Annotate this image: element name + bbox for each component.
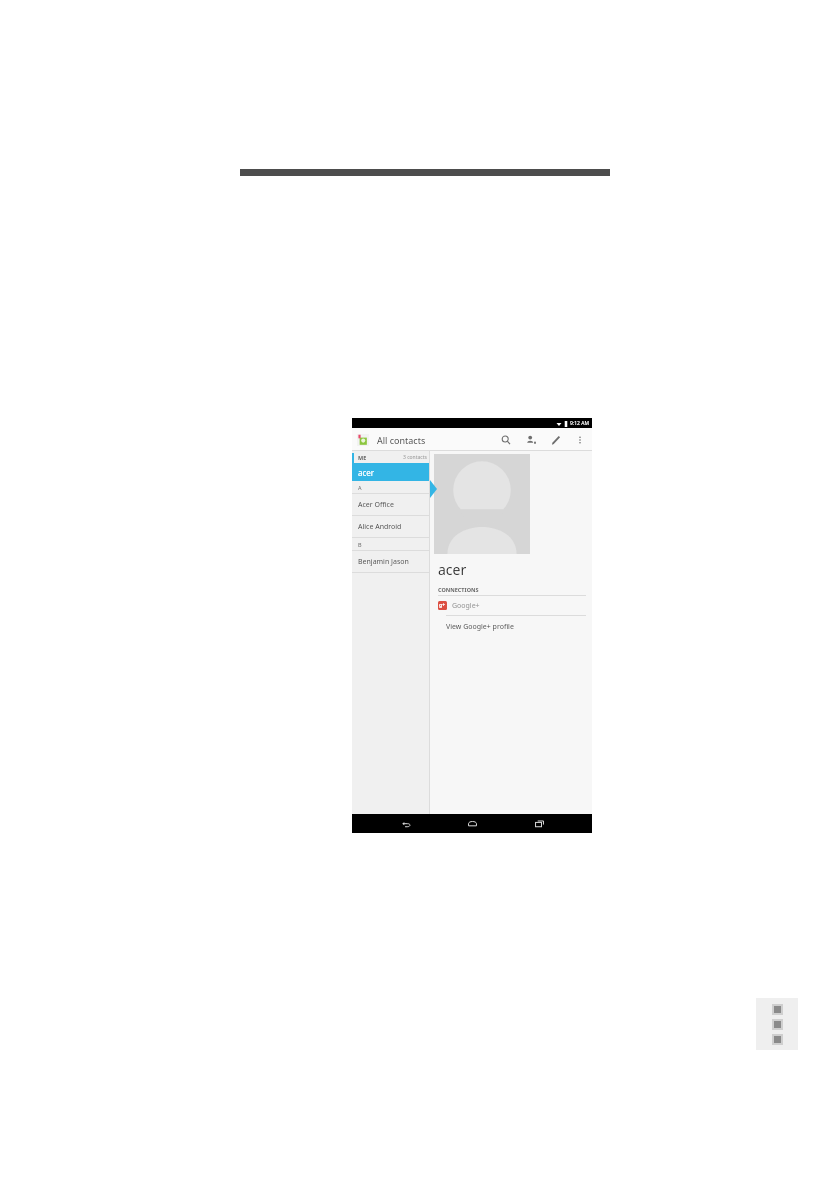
staticText: A bbox=[358, 484, 362, 491]
button[interactable]: Contacts app bbox=[356, 433, 370, 447]
button[interactable]: Add contact bbox=[523, 432, 539, 448]
staticText: 9:12 AM bbox=[570, 420, 589, 427]
staticText: acer bbox=[358, 467, 375, 478]
staticText: ME bbox=[358, 454, 367, 461]
staticText: 3 contacts bbox=[403, 454, 427, 461]
staticText: Alice Android bbox=[358, 522, 402, 532]
staticText: B bbox=[358, 541, 362, 548]
button[interactable]: g+ bbox=[430, 596, 592, 615]
staticText: Acer Office bbox=[358, 500, 394, 510]
button[interactable]: Recent apps bbox=[526, 814, 552, 833]
staticText: Google+ bbox=[452, 601, 480, 611]
staticText: Benjamin Jason bbox=[358, 557, 409, 567]
button[interactable]: Home bbox=[459, 814, 485, 833]
staticText: g+ bbox=[439, 602, 446, 609]
button[interactable]: View Google+ profile bbox=[430, 616, 592, 638]
button[interactable]: Benjamin Jason bbox=[352, 551, 430, 573]
staticText: acer bbox=[438, 560, 467, 579]
button[interactable]: Acer Office bbox=[352, 494, 430, 516]
button[interactable]: More options bbox=[572, 432, 588, 448]
button[interactable]: Edit bbox=[548, 432, 564, 448]
staticText: All contacts bbox=[377, 434, 426, 446]
button[interactable]: Search bbox=[498, 432, 514, 448]
staticText: View Google+ profile bbox=[446, 622, 514, 632]
staticText: CONNECTIONS bbox=[438, 586, 479, 593]
button[interactable]: acer bbox=[352, 463, 430, 481]
button[interactable]: Back bbox=[393, 814, 419, 833]
button[interactable]: Alice Android bbox=[352, 516, 430, 538]
